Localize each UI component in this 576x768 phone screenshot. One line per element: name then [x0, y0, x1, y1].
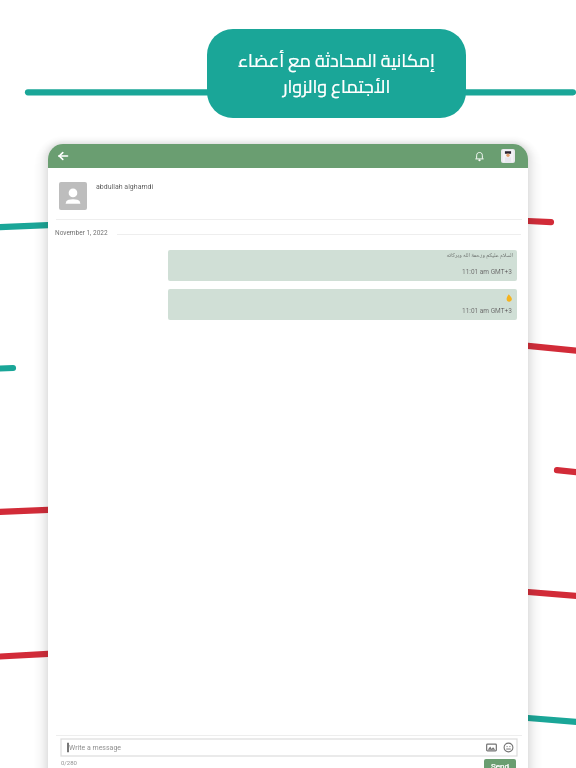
button[interactable]: Write a message: [61, 739, 517, 756]
button[interactable]: 11:01 am GMT+3: [168, 289, 517, 320]
button[interactable]: السلام عليكم ورحمة الله وبركاته: [168, 250, 517, 281]
staticText: 11:01 am GMT+3: [462, 268, 512, 276]
button[interactable]: Profile: [501, 149, 515, 163]
staticText: السلام عليكم ورحمة الله وبركاته: [417, 251, 513, 261]
staticText: abdullah alghamdi: [96, 183, 154, 191]
button[interactable]: Insert emoji: [503, 742, 514, 753]
button[interactable]: Attach image: [486, 742, 497, 753]
staticText: 11:01 am GMT+3: [462, 307, 512, 315]
staticText: إمكانية المحادثة مع أعضاء الأجتماع والزو…: [238, 44, 435, 103]
staticText: 0/280: [61, 759, 77, 766]
button[interactable]: إمكانية المحادثة مع أعضاء الأجتماع والزو…: [207, 29, 466, 118]
staticText: Send: [491, 762, 509, 768]
staticText: Write a message: [69, 744, 122, 752]
button[interactable]: Back: [53, 146, 72, 165]
button[interactable]: Send: [484, 759, 516, 768]
staticText: November 1, 2022: [55, 229, 108, 237]
button[interactable]: Notifications: [470, 147, 488, 165]
